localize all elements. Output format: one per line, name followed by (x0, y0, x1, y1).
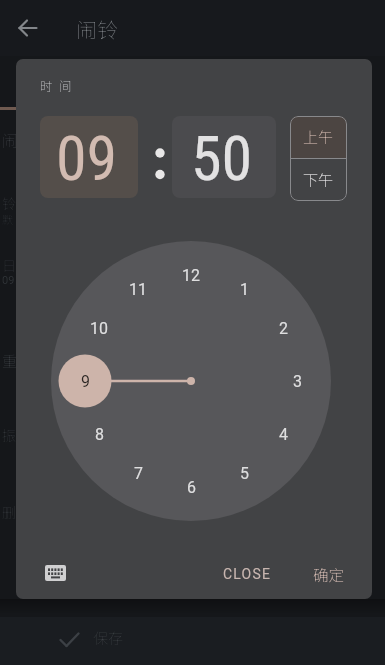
staticText: 铃 (2, 193, 16, 213)
button[interactable]: CLOSE (215, 560, 279, 588)
button[interactable]: 1 (228, 278, 260, 300)
button[interactable]: 5 (228, 462, 260, 484)
button[interactable]: 2 (267, 317, 299, 339)
staticText: 7 (134, 464, 143, 483)
staticText: 确定 (313, 563, 345, 585)
staticText: 12 (182, 266, 200, 285)
staticText: 保存 (93, 627, 124, 649)
staticText: 2 (279, 319, 288, 338)
button[interactable]: 6 (175, 476, 207, 498)
staticText: 4 (279, 425, 288, 444)
staticText: CLOSE (223, 566, 272, 582)
staticText: 1 (240, 280, 249, 299)
button[interactable] (36, 557, 74, 589)
staticText: 下午 (303, 169, 334, 191)
staticText: 闹 (2, 128, 19, 151)
button[interactable]: 4 (267, 423, 299, 445)
staticText: 删 (2, 502, 16, 522)
staticText: 09 (56, 122, 118, 195)
staticText: 时间 (40, 76, 79, 94)
staticText: 50 (191, 122, 253, 195)
staticText: 闹铃 (76, 14, 118, 44)
staticText: 上午 (303, 126, 334, 148)
button[interactable]: 8 (83, 423, 115, 445)
button[interactable]: 50 (172, 116, 276, 198)
staticText: 3 (293, 372, 302, 391)
button[interactable]: 09 (40, 116, 138, 198)
staticText: 09 (2, 274, 15, 287)
staticText: 10 (90, 319, 108, 338)
staticText: 重 (2, 350, 18, 372)
button[interactable]: 确定 (299, 560, 359, 588)
button[interactable]: 12 (175, 264, 207, 286)
staticText: 8 (95, 425, 104, 444)
staticText: 11 (129, 280, 147, 299)
staticText: 9 (81, 372, 90, 391)
button[interactable]: 上午 (290, 116, 347, 158)
staticText: 5 (240, 464, 249, 483)
button[interactable] (16, 16, 40, 40)
staticText: 振 (2, 425, 16, 445)
staticText: 日 (2, 255, 16, 275)
button[interactable]: 11 (122, 278, 154, 300)
button[interactable]: 10 (83, 317, 115, 339)
staticText: 6 (187, 478, 196, 497)
button[interactable]: 下午 (290, 159, 347, 201)
button[interactable]: 3 (281, 370, 313, 392)
staticText: 默 (2, 211, 13, 227)
button[interactable]: 7 (122, 462, 154, 484)
button[interactable]: 9 (69, 370, 101, 392)
button[interactable]: 保存 (40, 620, 190, 660)
